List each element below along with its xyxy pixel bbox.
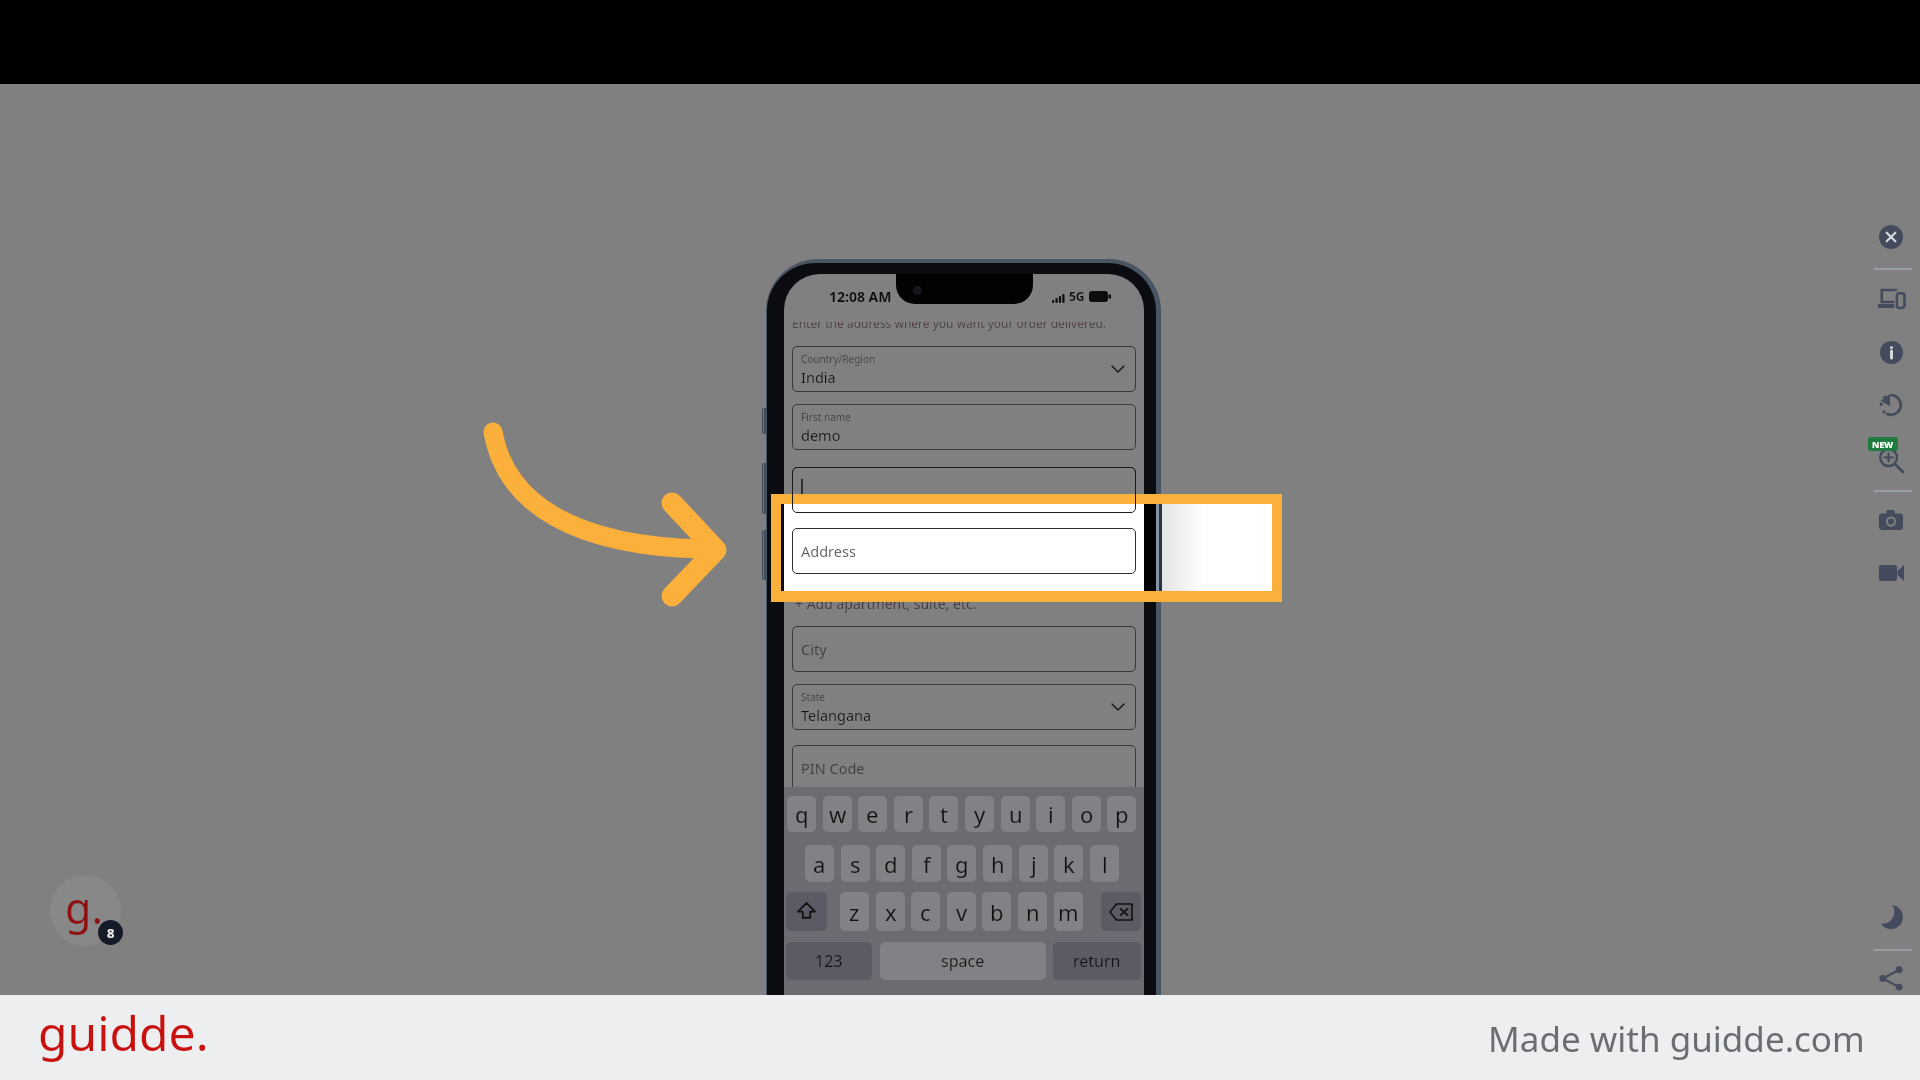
button[interactable]: z	[840, 892, 869, 931]
button[interactable]: p	[1107, 796, 1136, 832]
button[interactable]: b	[982, 892, 1011, 931]
button[interactable]: j	[1019, 845, 1048, 882]
button[interactable]: PIN Code	[792, 745, 1136, 791]
button[interactable]: x	[876, 892, 905, 931]
button[interactable]: State	[792, 684, 1136, 730]
button[interactable]: s	[841, 845, 870, 882]
staticText: e	[866, 799, 879, 829]
staticText: return	[1073, 950, 1121, 972]
button[interactable]: c	[911, 892, 940, 931]
staticText: demo	[801, 425, 841, 445]
staticText: h	[991, 849, 1005, 879]
button[interactable]: return	[1053, 942, 1141, 980]
button[interactable]	[792, 467, 1136, 513]
button[interactable]: n	[1018, 892, 1047, 931]
staticText: + Add apartment, suite, etc.	[795, 594, 977, 613]
staticText: Address	[801, 541, 856, 561]
button[interactable]: a	[805, 845, 834, 882]
staticText: w	[829, 799, 847, 829]
button[interactable]: u	[1001, 796, 1030, 832]
staticText: i	[1048, 799, 1054, 829]
button[interactable]: m	[1054, 892, 1083, 931]
staticText: r	[904, 799, 914, 829]
staticText: State	[801, 690, 825, 704]
staticText: g	[955, 849, 969, 879]
staticText: City	[801, 639, 827, 659]
button[interactable]: d	[876, 845, 905, 882]
button[interactable]: f	[912, 845, 941, 882]
staticText: PIN Code	[801, 758, 865, 778]
staticText: m	[1058, 897, 1079, 927]
button[interactable]: w	[823, 796, 852, 832]
staticText: k	[1063, 849, 1075, 879]
staticText: guidde.	[38, 1000, 209, 1065]
button[interactable]: k	[1054, 845, 1083, 882]
staticText: b	[990, 897, 1004, 927]
staticText: t	[940, 799, 948, 829]
staticText: Made with guidde.com	[1488, 1015, 1865, 1063]
staticText: g.	[65, 878, 103, 937]
button[interactable]: Backspace	[1101, 892, 1141, 931]
button[interactable]: Mirror device	[1869, 276, 1913, 320]
staticText: o	[1080, 799, 1094, 829]
button[interactable]: City	[792, 626, 1136, 672]
button[interactable]: g.	[50, 875, 121, 946]
button[interactable]: e	[858, 796, 887, 832]
staticText: s	[850, 849, 861, 879]
staticText: x	[885, 897, 897, 927]
staticText: f	[923, 849, 931, 879]
staticText: 123	[815, 950, 843, 972]
staticText: v	[956, 897, 968, 927]
button[interactable]: Screenshot	[1869, 498, 1913, 542]
button[interactable]: First name	[792, 404, 1136, 450]
staticText: space	[941, 950, 985, 972]
staticText: NEW	[1872, 438, 1894, 450]
button[interactable]: q	[787, 796, 816, 832]
staticText: Telangana	[801, 705, 872, 725]
button[interactable]: o	[1072, 796, 1101, 832]
staticText: l	[1102, 849, 1108, 879]
button[interactable]: Address	[792, 528, 1136, 574]
staticText: First name	[801, 410, 851, 424]
staticText: p	[1115, 799, 1129, 829]
button[interactable]: t	[929, 796, 958, 832]
button[interactable]: r	[894, 796, 923, 832]
button[interactable]: 123	[786, 942, 872, 980]
button[interactable]: Close	[1869, 215, 1913, 259]
button[interactable]: space	[880, 942, 1046, 980]
staticText: z	[849, 897, 860, 927]
staticText: Enter the address where you want your or…	[792, 315, 1107, 331]
button[interactable]: Replay	[1869, 383, 1913, 427]
staticText: a	[813, 849, 826, 879]
button[interactable]: Address	[792, 528, 1136, 574]
button[interactable]: h	[983, 845, 1012, 882]
button[interactable]: i	[1036, 796, 1065, 832]
staticText: u	[1009, 799, 1023, 829]
staticText: Address	[801, 541, 856, 561]
button[interactable]: Country/Region	[792, 346, 1136, 392]
button[interactable]: Information	[1869, 330, 1913, 374]
button[interactable]: Record video	[1869, 551, 1913, 595]
button[interactable]: l	[1090, 845, 1119, 882]
staticText: Country/Region	[801, 352, 876, 366]
staticText: j	[1031, 849, 1037, 879]
button[interactable]: Shift	[786, 892, 827, 931]
button[interactable]: y	[965, 796, 994, 832]
button[interactable]: Dark mode	[1869, 895, 1913, 939]
staticText: 8	[107, 924, 115, 942]
button[interactable]: g	[947, 845, 976, 882]
staticText: 5G	[1069, 288, 1085, 304]
staticText: q	[795, 799, 809, 829]
button[interactable]: Share	[1869, 956, 1913, 1000]
staticText: c	[920, 897, 931, 927]
button[interactable]: v	[947, 892, 976, 931]
staticText: y	[974, 799, 986, 829]
staticText: India	[801, 367, 836, 387]
button[interactable]: Zoom in	[1869, 435, 1913, 479]
staticText: d	[884, 849, 898, 879]
staticText: n	[1026, 897, 1040, 927]
staticText: 12:08 AM	[829, 287, 892, 306]
